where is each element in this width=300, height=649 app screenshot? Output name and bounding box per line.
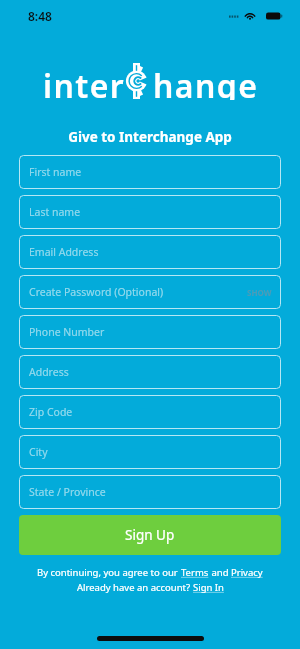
staticText: SHOW xyxy=(247,287,272,298)
staticText: Address xyxy=(29,365,69,379)
staticText: Already have an account? xyxy=(77,581,193,594)
button[interactable]: Last name xyxy=(19,195,281,229)
button[interactable]: City xyxy=(19,435,281,469)
staticText: Give to Interchange App xyxy=(0,128,300,146)
staticText: City xyxy=(29,445,48,459)
staticText: and xyxy=(209,566,231,579)
button[interactable]: First name xyxy=(19,155,281,189)
staticText: State / Province xyxy=(29,485,106,499)
button[interactable]: Sign Up xyxy=(19,515,281,555)
button[interactable]: Email Address xyxy=(19,235,281,269)
staticText: Create Password (Optional) xyxy=(29,285,164,299)
button[interactable]: Sign In xyxy=(193,581,224,594)
button[interactable]: State / Province xyxy=(19,475,281,509)
button[interactable]: Phone Number xyxy=(19,315,281,349)
button[interactable]: Create Password (Optional) xyxy=(19,275,281,309)
staticText: hange xyxy=(153,64,259,100)
staticText: Zip Code xyxy=(29,405,73,419)
staticText: inter xyxy=(43,64,126,100)
staticText: First name xyxy=(29,165,82,179)
staticText: By continuing, you agree to our xyxy=(37,566,181,579)
button[interactable]: Terms xyxy=(181,566,209,579)
staticText: Phone Number xyxy=(29,325,105,339)
staticText: Email Address xyxy=(29,245,99,259)
staticText: Last name xyxy=(29,205,81,219)
staticText: Sign Up xyxy=(125,526,175,544)
button[interactable]: Privacy xyxy=(231,566,263,579)
button[interactable]: Zip Code xyxy=(19,395,281,429)
button[interactable]: Address xyxy=(19,355,281,389)
staticText: 8:48 xyxy=(28,8,52,24)
